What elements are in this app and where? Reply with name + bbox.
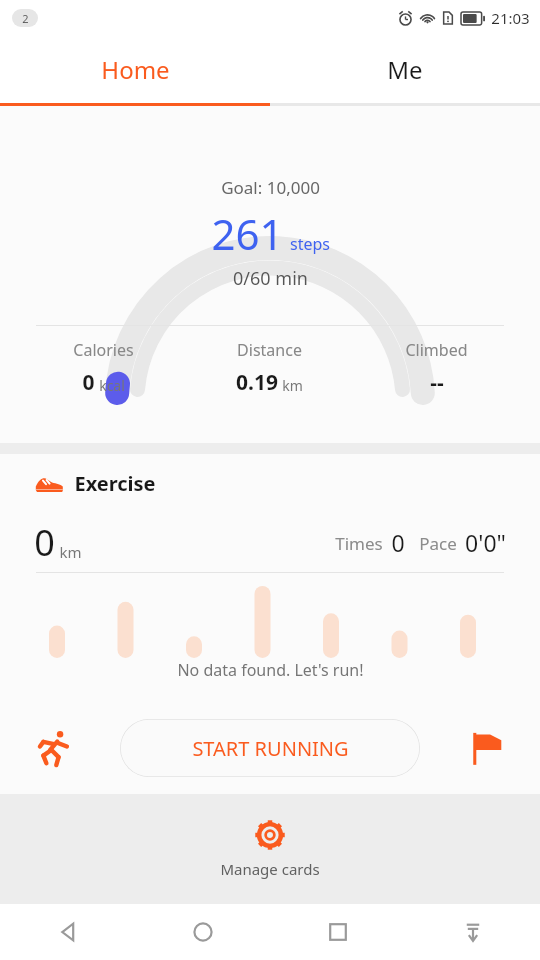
button[interactable]: Home: [135, 904, 270, 960]
staticText: No data found. Let's run!: [177, 659, 364, 681]
staticText: 0/60 min: [233, 266, 308, 291]
button[interactable]: Home: [0, 36, 270, 103]
staticText: Goal: 10,000: [221, 176, 320, 199]
staticText: 0: [82, 368, 95, 397]
button[interactable]: Running activity: [30, 724, 78, 772]
staticText: Home: [101, 53, 170, 86]
staticText: Climbed: [405, 339, 468, 361]
button[interactable]: Calories: [20, 326, 186, 410]
staticText: 0: [34, 518, 55, 567]
button[interactable]: Climbed: [353, 326, 520, 410]
staticText: 0'0": [465, 527, 506, 558]
staticText: 2: [22, 11, 29, 26]
staticText: km: [59, 542, 82, 562]
staticText: Times: [335, 532, 383, 555]
button[interactable]: START RUNNING: [120, 719, 420, 777]
staticText: kcal: [99, 376, 125, 395]
staticText: steps: [290, 233, 330, 255]
button[interactable]: Recents: [270, 904, 405, 960]
button[interactable]: Me: [270, 36, 540, 103]
staticText: 261: [211, 205, 284, 262]
staticText: START RUNNING: [192, 735, 349, 762]
staticText: 21:03: [491, 8, 530, 28]
button[interactable]: Manage cards: [0, 794, 540, 904]
button[interactable]: Back: [0, 904, 135, 960]
staticText: 0: [391, 527, 405, 558]
staticText: Exercise: [74, 470, 156, 497]
button[interactable]: Exercise: [34, 454, 540, 512]
staticText: 0.19: [236, 368, 278, 397]
staticText: Calories: [73, 339, 134, 361]
button[interactable]: Goal flag: [462, 724, 510, 772]
staticText: Me: [387, 53, 423, 86]
staticText: Distance: [237, 339, 302, 361]
staticText: --: [430, 368, 444, 397]
button[interactable]: Distance: [186, 326, 353, 410]
staticText: km: [282, 376, 303, 395]
staticText: Pace: [419, 532, 457, 555]
button[interactable]: Goal: 10,000: [0, 106, 540, 321]
button[interactable]: Hide navigation bar: [405, 904, 540, 960]
staticText: Manage cards: [220, 859, 320, 879]
